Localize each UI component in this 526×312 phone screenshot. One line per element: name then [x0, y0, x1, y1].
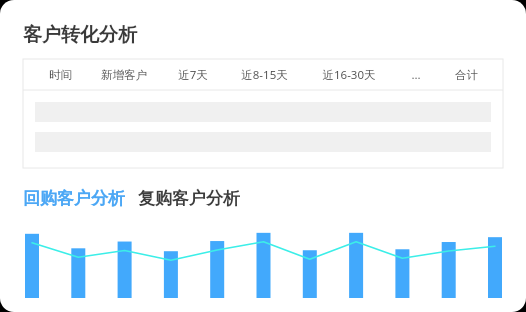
staticText: 新增客户	[101, 68, 147, 82]
button[interactable]: 近8-15天	[225, 67, 304, 83]
button[interactable]: ...	[393, 67, 439, 83]
staticText: 近7天	[178, 67, 208, 83]
button[interactable]: 时间	[33, 68, 87, 82]
staticText: ...	[411, 67, 421, 83]
other: Repurchase customer bar chart	[0, 220, 526, 298]
button[interactable]: 复购客户分析	[138, 186, 240, 211]
staticText: 复购客户分析	[138, 188, 240, 209]
staticText: 近16-30天	[322, 67, 376, 83]
staticText: 近8-15天	[241, 67, 288, 83]
staticText: 合计	[455, 68, 478, 82]
button[interactable]: 回购客户分析	[23, 186, 125, 211]
button[interactable]: 合计	[439, 68, 493, 82]
staticText: 时间	[49, 68, 72, 82]
button[interactable]: 近7天	[161, 67, 225, 83]
staticText: 客户转化分析	[23, 23, 137, 47]
button[interactable]: 新增客户	[87, 68, 161, 82]
button[interactable]: 近16-30天	[304, 67, 393, 83]
staticText: 回购客户分析	[23, 188, 125, 209]
